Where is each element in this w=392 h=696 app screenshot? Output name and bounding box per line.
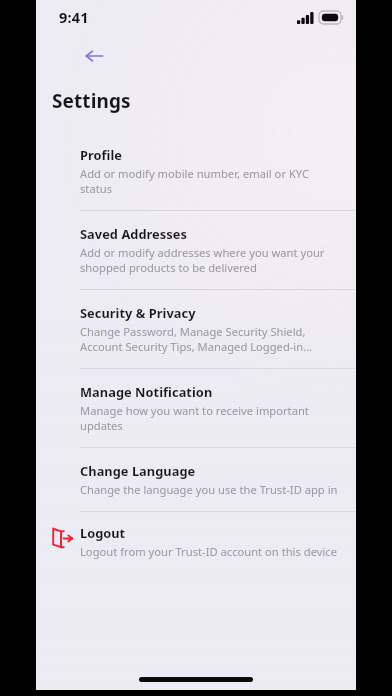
staticText: Add or modify mobile number, email or KY… xyxy=(80,166,310,181)
staticText: Logout xyxy=(80,524,126,541)
staticText: Logout from your Trust-ID account on thi… xyxy=(80,544,337,559)
staticText: Add or modify addresses where you want y… xyxy=(80,245,325,260)
button[interactable]: Saved Addresses xyxy=(36,211,356,289)
staticText: Saved Addresses xyxy=(80,225,187,242)
staticText: status xyxy=(80,181,112,196)
button[interactable]: Security & Privacy xyxy=(36,290,356,368)
staticText: 9:41 xyxy=(59,7,89,27)
staticText: Manage how you want to receive important xyxy=(80,403,309,418)
button[interactable]: Back xyxy=(80,42,108,70)
staticText: Profile xyxy=(80,146,122,163)
button[interactable]: Profile xyxy=(36,132,356,210)
staticText: Manage Notification xyxy=(80,383,213,400)
staticText: updates xyxy=(80,418,123,433)
staticText: Change Password, Manage Security Shield, xyxy=(80,324,306,339)
staticText: Settings xyxy=(52,88,131,114)
staticText: Change the language you use the Trust-ID… xyxy=(80,482,338,497)
staticText: Security & Privacy xyxy=(80,304,196,321)
staticText: shopped products to be delivered xyxy=(80,260,257,275)
button[interactable]: Change Language xyxy=(36,448,356,511)
staticText: Change Language xyxy=(80,462,196,479)
staticText: Account Security Tips, Managed Logged-in… xyxy=(80,339,313,354)
button[interactable]: Manage Notification xyxy=(36,369,356,447)
button[interactable]: Logout xyxy=(36,512,356,573)
